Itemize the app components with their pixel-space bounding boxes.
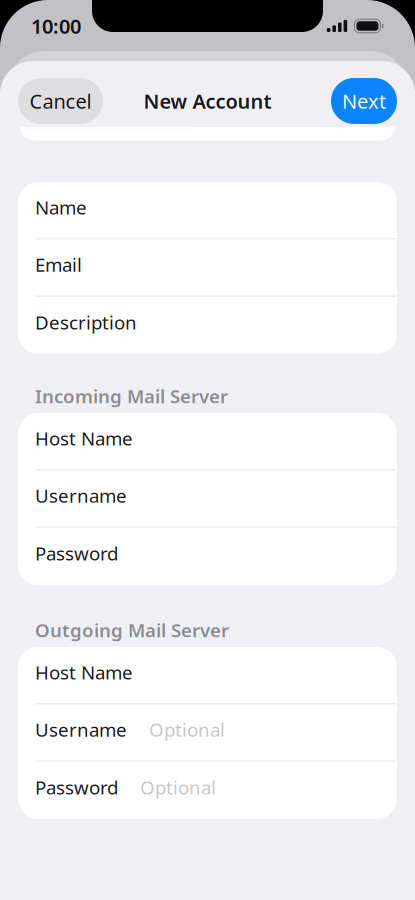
staticText: Cancel (29, 88, 91, 114)
staticText: Incoming Mail Server (35, 384, 228, 408)
staticText: Optional (149, 717, 225, 742)
staticText: Next (342, 88, 386, 114)
staticText: Username (35, 717, 127, 742)
staticText: Description (35, 310, 137, 335)
staticText: New Account (143, 88, 271, 114)
staticText: Password (35, 541, 118, 566)
staticText: Username (35, 483, 127, 508)
staticText: Outgoing Mail Server (35, 618, 229, 642)
staticText: Optional (140, 775, 216, 800)
staticText: Name (35, 195, 87, 220)
staticText: Host Name (35, 660, 133, 685)
button[interactable]: Next (331, 78, 397, 124)
staticText: Email (35, 252, 82, 277)
button[interactable]: Cancel (18, 78, 103, 124)
staticText: Password (35, 775, 118, 800)
staticText: 10:00 (31, 13, 81, 39)
staticText: Host Name (35, 426, 133, 451)
